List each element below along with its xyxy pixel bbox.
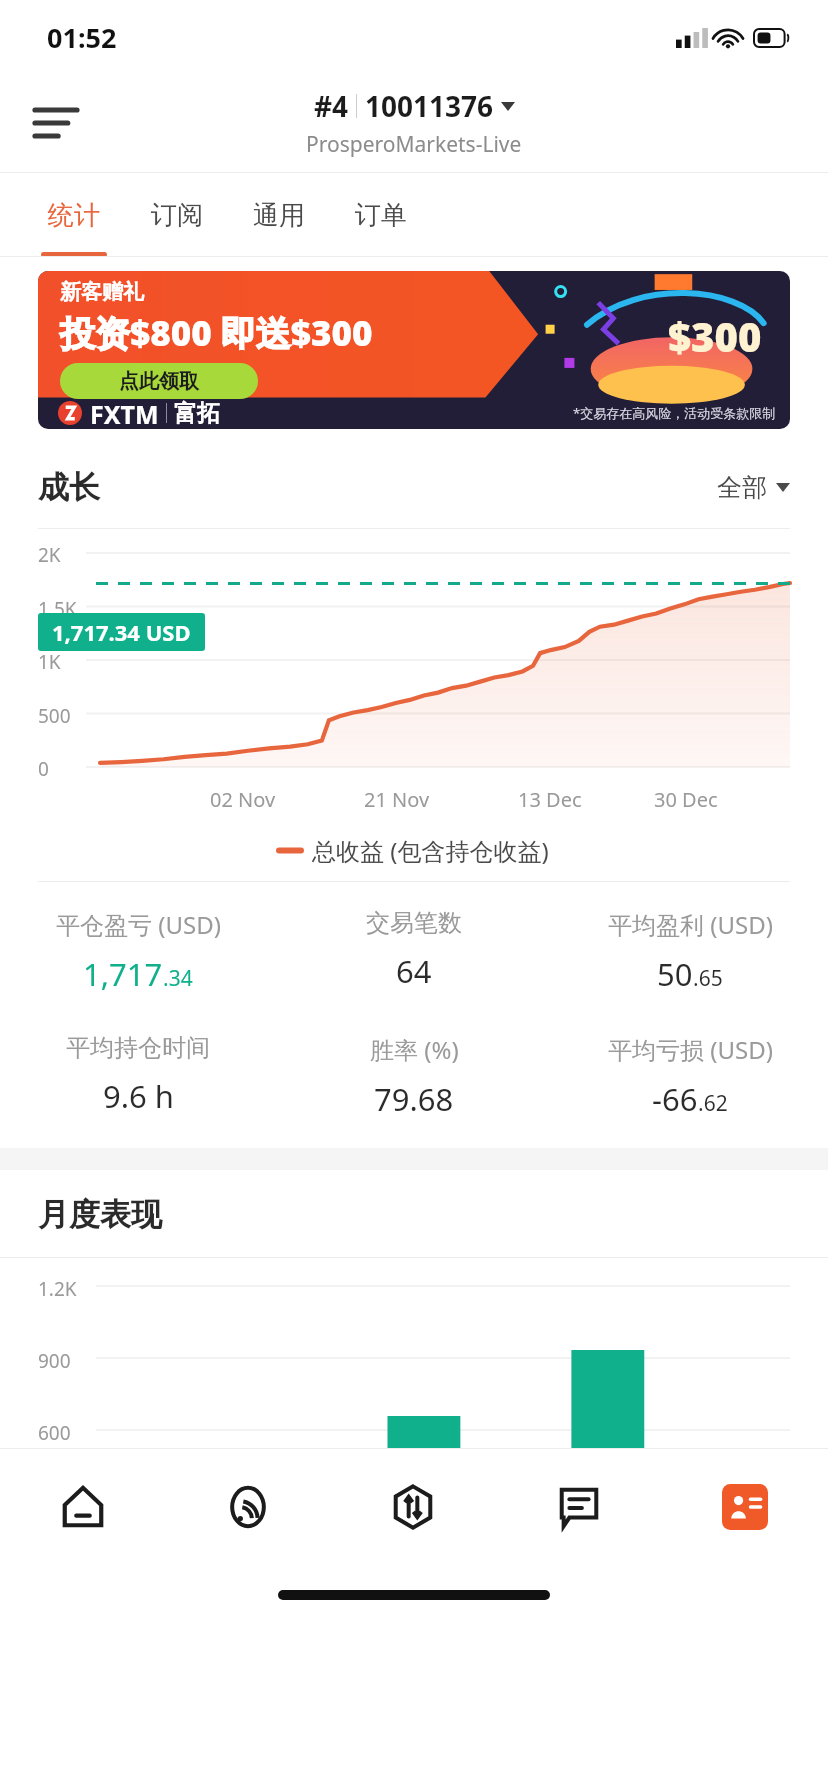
button[interactable]: $300 xyxy=(38,271,790,429)
staticText: .34 xyxy=(163,964,193,993)
staticText: 通用 xyxy=(253,199,305,232)
button[interactable]: Messages xyxy=(496,1449,662,1565)
staticText: 01:52 xyxy=(47,19,117,56)
staticText: 2K xyxy=(38,542,61,568)
staticText: 64 xyxy=(396,950,432,992)
staticText: 订单 xyxy=(355,199,407,232)
button[interactable]: Signals xyxy=(165,1449,330,1565)
staticText: 胜率 (%) xyxy=(370,1033,459,1066)
staticText: 统计 xyxy=(48,199,100,232)
staticText: FXTM xyxy=(90,397,159,429)
staticText: 1.5K xyxy=(38,596,77,622)
button[interactable]: 通用 xyxy=(228,173,330,257)
button[interactable]: Home xyxy=(0,1449,165,1565)
staticText: 平均盈利 (USD) xyxy=(608,908,773,941)
staticText: .65 xyxy=(693,964,723,993)
staticText: 平均亏损 (USD) xyxy=(608,1033,773,1066)
staticText: 10011376 xyxy=(365,87,494,125)
staticText: 1,717 xyxy=(83,953,163,995)
staticText: 订阅 xyxy=(151,199,203,232)
staticText: 30 Dec xyxy=(654,786,790,813)
staticText: 500 xyxy=(38,703,71,729)
staticText: 50 xyxy=(657,953,693,995)
button[interactable]: Trade xyxy=(330,1449,496,1565)
staticText: $300 xyxy=(668,309,762,363)
staticText: 平均持仓时间 xyxy=(66,1033,210,1063)
button[interactable]: #4 xyxy=(306,87,522,159)
staticText: 月度表现 xyxy=(38,1195,162,1234)
staticText: 投资$800 即送$300 xyxy=(60,309,373,357)
staticText: 13 Dec xyxy=(518,786,654,813)
button[interactable]: 全部 xyxy=(717,472,790,503)
staticText: 0 xyxy=(38,756,49,782)
staticText: ProsperoMarkets-Live xyxy=(306,130,522,159)
staticText: -66 xyxy=(652,1078,698,1120)
button[interactable]: Profile xyxy=(662,1449,828,1565)
staticText: 点此领取 xyxy=(119,369,199,394)
staticText: 1,717.34 USD xyxy=(52,617,191,647)
button[interactable]: 统计 xyxy=(22,173,126,257)
staticText: 交易笔数 xyxy=(366,908,462,938)
staticText: 9.6 h xyxy=(103,1075,174,1117)
button[interactable]: 订阅 xyxy=(126,173,228,257)
staticText: 富拓 xyxy=(174,399,220,428)
staticText: .62 xyxy=(698,1089,728,1118)
staticText: 900 xyxy=(38,1348,71,1374)
button[interactable]: Menu xyxy=(26,93,86,153)
staticText: 总收益 (包含持仓收益) xyxy=(312,834,549,867)
staticText: 79.68 xyxy=(374,1078,454,1120)
button[interactable]: 点此领取 xyxy=(60,363,258,399)
staticText: 成长 xyxy=(38,468,100,507)
staticText: 1.2K xyxy=(38,1276,77,1302)
staticText: *交易存在高风险，活动受条款限制 xyxy=(573,404,776,422)
button[interactable]: 订单 xyxy=(330,173,432,257)
staticText: 600 xyxy=(38,1420,71,1446)
staticText: 02 Nov xyxy=(210,786,364,813)
staticText: 21 Nov xyxy=(364,786,518,813)
staticText: #4 xyxy=(314,87,349,125)
staticText: 新客赠礼 xyxy=(60,279,144,305)
staticText: 1K xyxy=(38,649,61,675)
staticText: 全部 xyxy=(717,472,767,503)
staticText: 平仓盈亏 (USD) xyxy=(56,908,221,941)
